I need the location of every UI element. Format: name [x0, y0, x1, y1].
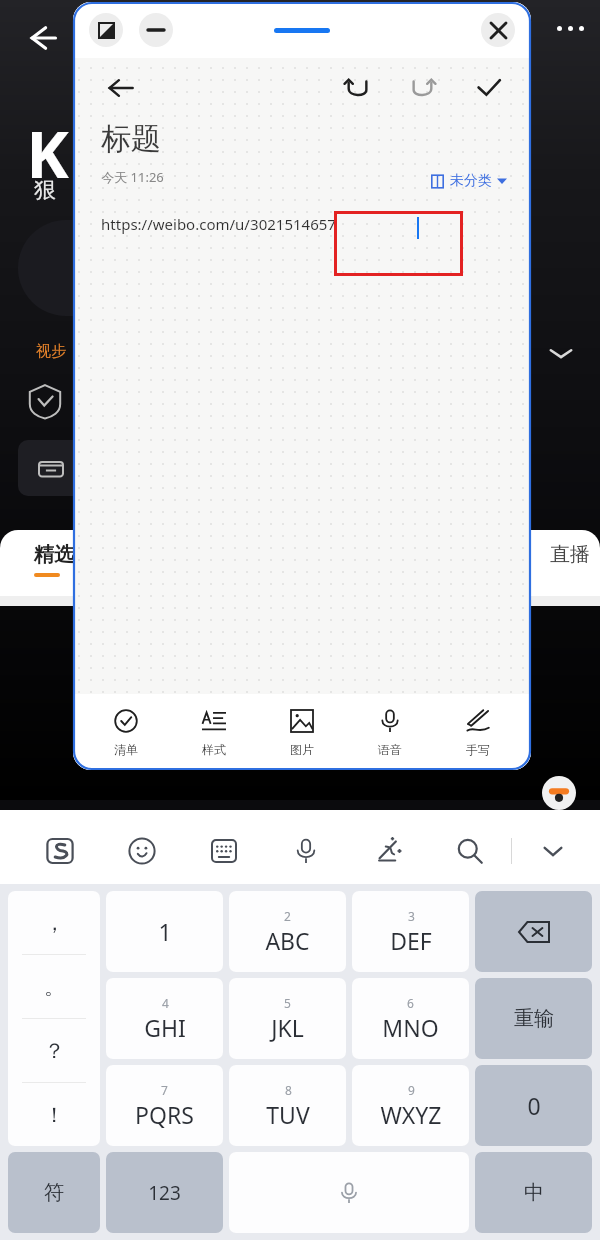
staticText: 今天 11:26	[101, 168, 164, 186]
staticText: 2	[284, 908, 291, 924]
staticText: K	[26, 110, 69, 197]
button[interactable]: 未分类	[430, 172, 507, 190]
button[interactable]: Voice input	[265, 818, 347, 884]
button[interactable]: 符	[8, 1152, 100, 1233]
staticText: 狠	[34, 176, 56, 204]
button[interactable]: Sogou	[18, 818, 101, 884]
button[interactable]: Delete	[475, 891, 592, 972]
button[interactable]: Expand	[544, 336, 578, 370]
staticText: 5	[284, 995, 291, 1011]
button[interactable]: Space	[229, 1152, 469, 1233]
staticText: WXYZ	[380, 1099, 442, 1130]
button[interactable]: Back	[14, 10, 70, 66]
button[interactable]: Back	[99, 66, 143, 110]
button[interactable]: 7	[106, 1065, 223, 1146]
button[interactable]: More options	[557, 26, 584, 31]
staticText: 3021514657	[250, 214, 336, 234]
staticText: 标题	[101, 120, 161, 158]
button[interactable]: 手写	[443, 707, 513, 757]
staticText: ，	[44, 910, 65, 936]
button[interactable]: 1	[106, 891, 223, 972]
staticText: 未分类	[450, 172, 492, 190]
staticText: 9	[408, 1082, 415, 1098]
staticText: 视步	[36, 342, 66, 361]
button[interactable]: Redo	[403, 68, 443, 108]
button[interactable]: Emoji	[101, 818, 183, 884]
button[interactable]: 123	[106, 1152, 223, 1233]
staticText: PQRS	[135, 1099, 194, 1130]
button[interactable]: 0	[475, 1065, 592, 1146]
button[interactable]: Done	[469, 68, 509, 108]
button[interactable]: Assistant	[542, 776, 576, 810]
staticText: ！	[44, 1102, 65, 1128]
staticText: 图片	[290, 742, 314, 757]
staticText: 8	[285, 1082, 292, 1098]
staticText: JKL	[271, 1012, 304, 1043]
staticText: 0	[527, 1090, 541, 1121]
staticText: 1	[158, 916, 172, 947]
button[interactable]: Close	[481, 13, 515, 47]
staticText: 123	[148, 1180, 181, 1206]
staticText: 重输	[514, 1006, 554, 1031]
button[interactable]: 9	[352, 1065, 469, 1146]
staticText: https://weibo.com/u/	[101, 214, 250, 234]
staticText: 6	[407, 995, 414, 1011]
staticText: GHI	[144, 1012, 186, 1043]
staticText: 7	[161, 1082, 168, 1098]
staticText: 样式	[202, 742, 226, 757]
staticText: 符	[44, 1180, 64, 1205]
staticText: TUV	[266, 1099, 310, 1130]
button[interactable]: 3	[352, 891, 469, 972]
button[interactable]: 2	[229, 891, 346, 972]
button[interactable]: Resize	[89, 13, 123, 47]
button[interactable]: 重输	[475, 978, 592, 1059]
button[interactable]: Handwriting	[347, 818, 429, 884]
button[interactable]: 5	[229, 978, 346, 1059]
button[interactable]: Search	[429, 818, 511, 884]
staticText: 中	[524, 1180, 544, 1205]
button[interactable]: Undo	[337, 68, 377, 108]
button[interactable]: Store	[18, 440, 84, 496]
staticText: 精选	[34, 542, 74, 567]
button[interactable]: Collapse keyboard	[512, 818, 594, 884]
staticText: 手写	[466, 742, 490, 757]
staticText: 3	[408, 908, 415, 924]
button[interactable]: 8	[229, 1065, 346, 1146]
button[interactable]: 语音	[355, 707, 425, 757]
button[interactable]: 4	[106, 978, 223, 1059]
button[interactable]: ，	[8, 891, 100, 1146]
button[interactable]: Keyboard layout	[183, 818, 265, 884]
staticText: ABC	[265, 925, 310, 956]
staticText: 清单	[114, 742, 138, 757]
button[interactable]: 样式	[179, 707, 249, 757]
staticText: ？	[44, 1038, 65, 1064]
staticText: 。	[44, 974, 65, 1000]
button[interactable]: 图片	[267, 707, 337, 757]
staticText: 直播	[550, 542, 590, 567]
button[interactable]: Minimize	[139, 13, 173, 47]
staticText: 语音	[378, 742, 402, 757]
staticText: DEF	[390, 925, 432, 956]
button[interactable]: 中	[475, 1152, 592, 1233]
button[interactable]: 清单	[91, 707, 161, 757]
button[interactable]: 6	[352, 978, 469, 1059]
staticText: 4	[162, 995, 169, 1011]
staticText: MNO	[382, 1012, 439, 1043]
